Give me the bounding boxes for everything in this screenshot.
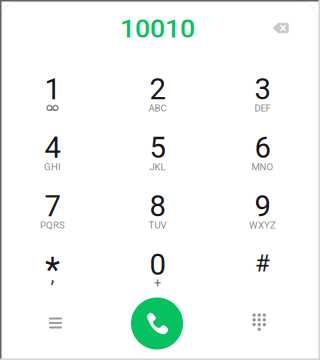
staticText: 8: [149, 189, 165, 223]
staticText: 6: [254, 131, 270, 165]
button[interactable]: 5: [109, 118, 205, 174]
button[interactable]: 9: [214, 177, 310, 233]
button[interactable]: 4: [4, 118, 100, 174]
button[interactable]: Recents: [33, 301, 77, 345]
staticText: +: [154, 276, 161, 290]
button[interactable]: 8: [109, 177, 205, 233]
staticText: 5: [149, 131, 165, 165]
button[interactable]: 1: [4, 60, 100, 116]
staticText: 0: [149, 248, 165, 282]
staticText: 1: [44, 72, 60, 106]
button[interactable]: Call: [131, 297, 183, 349]
button[interactable]: 2: [109, 60, 205, 116]
staticText: TUV: [148, 220, 166, 231]
staticText: 2: [149, 72, 165, 106]
staticText: 9: [254, 189, 270, 223]
staticText: 10010: [120, 13, 195, 44]
staticText: 7: [44, 189, 60, 223]
button[interactable]: #: [214, 235, 310, 291]
button[interactable]: 3: [214, 60, 310, 116]
staticText: DEF: [254, 103, 270, 114]
button[interactable]: 7: [4, 177, 100, 233]
button[interactable]: Delete: [261, 11, 301, 45]
button[interactable]: *: [4, 235, 100, 291]
button[interactable]: 0: [109, 235, 205, 291]
staticText: *: [45, 250, 60, 290]
staticText: ,: [50, 264, 54, 287]
button[interactable]: 6: [214, 118, 310, 174]
staticText: #: [255, 249, 270, 277]
staticText: JKL: [149, 161, 165, 173]
staticText: 3: [254, 72, 270, 106]
staticText: MNO: [251, 161, 273, 173]
staticText: PQRS: [40, 220, 65, 231]
staticText: 4: [44, 131, 60, 165]
staticText: ABC: [148, 103, 166, 114]
staticText: WXYZ: [249, 220, 276, 231]
button[interactable]: Keypad: [237, 300, 281, 344]
staticText: GHI: [44, 161, 61, 173]
